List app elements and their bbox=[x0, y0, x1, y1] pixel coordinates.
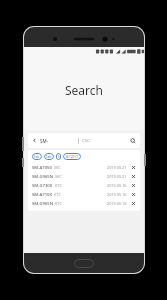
staticText: 2019.05.21 bbox=[107, 165, 127, 170]
button[interactable]: SM-G730X bbox=[32, 181, 136, 190]
staticText: S bbox=[58, 155, 60, 159]
button[interactable]: Back bbox=[28, 133, 140, 148]
staticText: SM- bbox=[40, 138, 49, 144]
button[interactable]: SM-G965N bbox=[32, 199, 136, 208]
button[interactable]: Home bbox=[74, 259, 94, 268]
button[interactable]: Tab bbox=[44, 153, 54, 160]
button[interactable]: Tab bbox=[32, 153, 42, 160]
staticText: SM-A7050 bbox=[32, 165, 52, 171]
staticText: 2019.05.16 bbox=[107, 192, 127, 197]
other: Search bbox=[130, 138, 136, 144]
button[interactable]: Remove SM-A710X bbox=[131, 192, 136, 197]
button[interactable]: SM-A710X bbox=[32, 190, 136, 199]
staticText: SM-G730X bbox=[32, 183, 53, 189]
button[interactable]: SM-G965N bbox=[32, 172, 136, 181]
button[interactable]: Remove SM-G965N bbox=[131, 201, 136, 206]
staticText: 2019.05.16 bbox=[107, 183, 127, 188]
button[interactable]: Remove SM-G965N bbox=[131, 174, 136, 179]
staticText: SM-A710X bbox=[32, 192, 52, 198]
staticText: Tab bbox=[46, 155, 52, 159]
button[interactable]: S bbox=[56, 153, 61, 160]
staticText: A7 2017 bbox=[66, 155, 78, 159]
staticText: KTC bbox=[55, 183, 62, 188]
button[interactable]: Remove SM-A7050 bbox=[131, 165, 136, 170]
staticText: KTC bbox=[55, 201, 62, 206]
staticText: 2019.05.16 bbox=[107, 201, 127, 206]
button[interactable]: Remove SM-G730X bbox=[131, 183, 136, 188]
button[interactable]: SM-A7050 bbox=[32, 163, 136, 172]
staticText: KTC bbox=[54, 192, 61, 197]
staticText: CSC bbox=[82, 138, 90, 144]
staticText: SKC bbox=[55, 174, 62, 179]
staticText: SM-G965N bbox=[32, 201, 53, 207]
button[interactable]: A7 2017 bbox=[63, 153, 81, 160]
staticText: SM-G965N bbox=[32, 174, 53, 180]
staticText: 2019.05.21 bbox=[107, 174, 127, 179]
staticText: SKC bbox=[54, 165, 61, 170]
staticText: Tab bbox=[34, 155, 40, 159]
other: Back bbox=[32, 138, 37, 143]
staticText: Search bbox=[65, 82, 103, 98]
